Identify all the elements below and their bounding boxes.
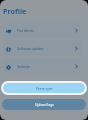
staticText: Profile [3, 6, 27, 16]
staticText: Pair device [17, 28, 35, 33]
staticText: Force sync [36, 86, 53, 91]
staticText: Settings [17, 64, 30, 69]
button[interactable]: Software update [3, 40, 83, 56]
button[interactable]: Pair device [3, 22, 83, 38]
staticText: Software update [17, 46, 44, 51]
button[interactable]: Settings [3, 58, 83, 74]
button[interactable]: Upload logs [2, 99, 86, 110]
staticText: Upload logs [35, 102, 54, 107]
button[interactable]: Force sync [1, 81, 87, 95]
